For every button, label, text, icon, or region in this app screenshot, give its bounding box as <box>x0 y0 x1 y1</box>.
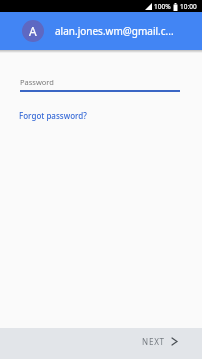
button[interactable]: A <box>0 12 202 50</box>
staticText: 100% <box>154 2 171 11</box>
staticText: alan.jones.wm@gmail.c... <box>55 24 174 38</box>
staticText: 10:00 <box>180 2 197 11</box>
staticText: A <box>29 23 37 39</box>
staticText: NEXT <box>142 336 165 347</box>
button[interactable]: NEXT <box>0 328 202 354</box>
staticText: Forgot password? <box>19 110 87 121</box>
button[interactable]: Forgot password? <box>19 110 87 121</box>
staticText: Password <box>20 77 54 87</box>
